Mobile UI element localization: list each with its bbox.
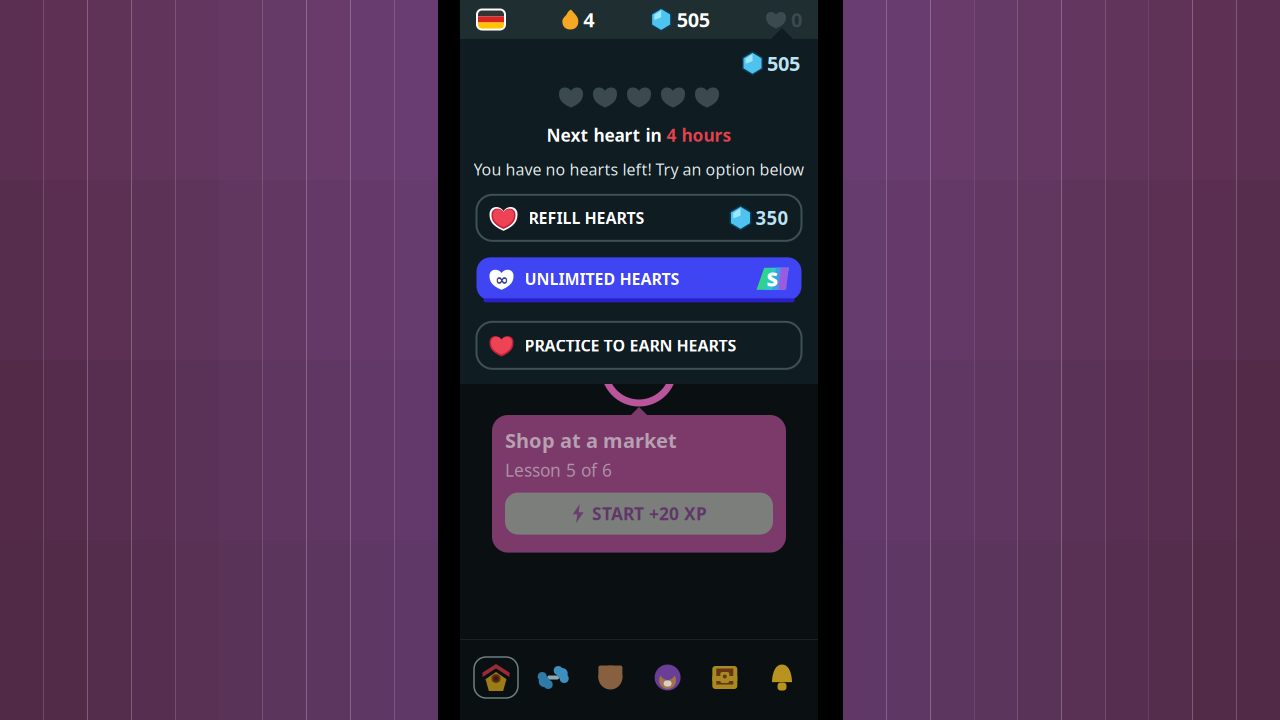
staticText: PRACTICE TO EARN HEARTS — [524, 335, 736, 356]
button[interactable]: Streak: 4 — [562, 6, 594, 33]
staticText: 4 hours — [666, 124, 731, 147]
button[interactable]: REFILL HEARTS — [476, 195, 801, 241]
staticText: 4 — [583, 6, 594, 33]
button[interactable]: Practice — [531, 657, 575, 698]
staticText: You have no hearts left! Try an option b… — [473, 159, 804, 180]
staticText: Next heart in — [546, 124, 666, 147]
button[interactable]: START +20 XP — [505, 493, 773, 535]
button[interactable]: Learn — [474, 657, 518, 698]
staticText: START +20 XP — [592, 502, 707, 525]
button[interactable]: Hearts: 0 — [766, 6, 802, 33]
button[interactable]: ∞ — [476, 258, 801, 304]
button[interactable]: Leaderboards — [588, 657, 632, 698]
staticText: 350 — [755, 205, 788, 230]
staticText: ∞ — [495, 271, 508, 289]
staticText: 505 — [677, 6, 710, 33]
button[interactable]: Gems: 505 — [651, 6, 710, 33]
staticText: 0 — [791, 6, 802, 33]
button[interactable]: Profile — [646, 657, 690, 698]
staticText: Lesson 5 of 6 — [505, 459, 612, 482]
staticText: Shop at a market — [505, 427, 677, 454]
button[interactable]: Language: German — [476, 8, 506, 30]
button[interactable]: Quests — [703, 657, 747, 698]
staticText: UNLIMITED HEARTS — [524, 268, 679, 289]
button[interactable]: PRACTICE TO EARN HEARTS — [476, 322, 801, 369]
staticText: REFILL HEARTS — [528, 207, 644, 228]
button[interactable]: Notifications — [760, 657, 804, 698]
staticText: 505 — [767, 50, 800, 77]
staticText: S — [766, 265, 778, 292]
